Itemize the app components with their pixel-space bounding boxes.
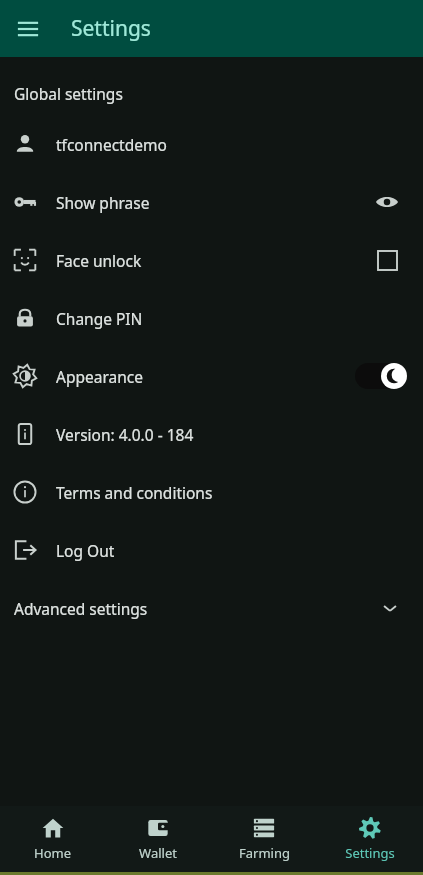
button[interactable]: Log Out bbox=[0, 521, 423, 579]
button[interactable]: Face unlock toggle bbox=[367, 240, 407, 280]
staticText: Global settings bbox=[14, 83, 123, 104]
button[interactable]: Advanced settings bbox=[0, 579, 423, 637]
button[interactable]: Face unlock bbox=[0, 231, 423, 289]
staticText: Home bbox=[34, 844, 71, 862]
button[interactable]: Home bbox=[0, 806, 105, 872]
staticText: Appearance bbox=[56, 366, 353, 387]
button[interactable]: Version: 4.0.0 - 184 bbox=[0, 405, 423, 463]
staticText: Wallet bbox=[139, 844, 177, 862]
staticText: Change PIN bbox=[56, 308, 407, 329]
button[interactable]: Wallet bbox=[105, 806, 211, 872]
staticText: Farming bbox=[239, 844, 290, 862]
button[interactable]: Appearance dark mode toggle bbox=[353, 361, 407, 391]
staticText: tfconnectdemo bbox=[56, 134, 407, 155]
staticText: Terms and conditions bbox=[56, 482, 407, 503]
staticText: Advanced settings bbox=[14, 598, 381, 619]
staticText: Face unlock bbox=[56, 250, 367, 271]
button[interactable]: Show phrase bbox=[367, 182, 407, 222]
button[interactable]: Appearance bbox=[0, 347, 423, 405]
button[interactable]: tfconnectdemo bbox=[0, 115, 423, 173]
staticText: Show phrase bbox=[56, 192, 367, 213]
staticText: Settings bbox=[345, 844, 395, 862]
button[interactable]: Farming bbox=[211, 806, 317, 872]
staticText: Log Out bbox=[56, 540, 407, 561]
staticText: Settings bbox=[71, 14, 151, 43]
button[interactable]: Settings bbox=[317, 806, 423, 872]
staticText: Version: 4.0.0 - 184 bbox=[56, 424, 407, 445]
button[interactable]: Terms and conditions bbox=[0, 463, 423, 521]
button[interactable]: Change PIN bbox=[0, 289, 423, 347]
button[interactable]: Show phrase bbox=[0, 173, 423, 231]
button[interactable]: Open navigation menu bbox=[8, 9, 48, 49]
